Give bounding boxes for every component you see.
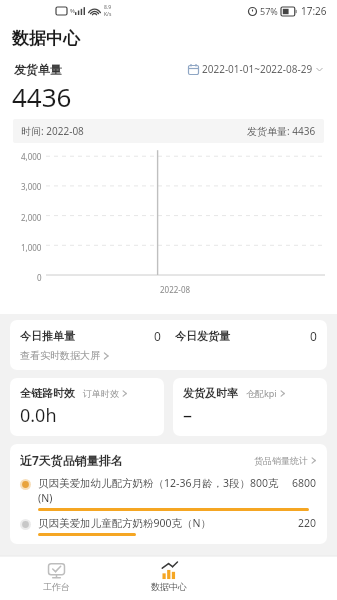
- staticText: 全链路时效: [20, 386, 75, 400]
- button[interactable]: 贝因美爱加儿童配方奶粉900克（N）: [20, 516, 317, 536]
- staticText: 发货及时率: [183, 386, 238, 400]
- staticText: 订单时效: [83, 388, 119, 399]
- staticText: 0: [154, 328, 161, 344]
- staticText: 2022-08: [160, 284, 191, 295]
- staticText: 0.0h: [20, 403, 57, 428]
- button[interactable]: 全链路时效: [10, 378, 164, 436]
- button[interactable]: 查看实时数据大屏: [20, 349, 110, 362]
- staticText: 4436: [12, 79, 72, 114]
- staticText: 数据中心: [151, 581, 187, 592]
- staticText: 0: [310, 328, 317, 344]
- button[interactable]: 今日推单量: [10, 320, 327, 370]
- staticText: 贝因美爱加幼儿配方奶粉（12-36月龄，3段）800克 (N): [38, 476, 292, 505]
- staticText: 贝因美爱加儿童配方奶粉900克（N）: [38, 516, 298, 530]
- staticText: 发货单量: [14, 62, 62, 77]
- staticText: 今日推单量: [20, 329, 75, 343]
- staticText: 3,000: [21, 181, 42, 192]
- staticText: 货品销量统计: [254, 455, 308, 466]
- staticText: 近7天货品销量排名: [20, 452, 123, 468]
- staticText: 数据中心: [12, 28, 80, 49]
- staticText: 17:26: [301, 4, 327, 18]
- staticText: 今日发货量: [175, 329, 230, 343]
- button[interactable]: 发货及时率: [173, 378, 327, 436]
- staticText: 时间: 2022-08: [21, 124, 84, 138]
- staticText: 220: [298, 516, 317, 530]
- staticText: 2,000: [21, 212, 42, 223]
- staticText: 4,000: [21, 151, 42, 162]
- button[interactable]: 贝因美爱加幼儿配方奶粉（12-36月龄，3段）800克 (N): [20, 476, 317, 511]
- staticText: 2022-01-01~2022-08-29: [202, 62, 313, 76]
- staticText: 查看实时数据大屏: [20, 349, 100, 362]
- staticText: 0: [37, 272, 42, 283]
- staticText: –: [183, 403, 192, 428]
- staticText: 8.9: [104, 4, 112, 11]
- button[interactable]: 2022-01-01~2022-08-29: [186, 60, 325, 78]
- staticText: 工作台: [43, 581, 70, 592]
- staticText: 发货单量: 4436: [247, 124, 316, 138]
- staticText: 57%: [260, 5, 278, 17]
- staticText: %: [70, 7, 75, 15]
- staticText: 6800: [292, 476, 317, 490]
- button[interactable]: 货品销量统计: [254, 455, 317, 466]
- staticText: K/s: [104, 11, 112, 18]
- button[interactable]: 工作台: [0, 556, 113, 600]
- staticText: 仓配kpi: [246, 387, 277, 399]
- button[interactable]: 数据中心: [113, 556, 225, 600]
- staticText: 1,000: [21, 242, 42, 253]
